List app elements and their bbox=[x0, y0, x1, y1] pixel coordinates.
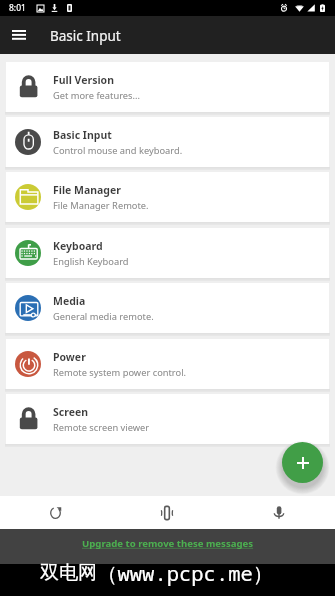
staticText: File Manager Remote. bbox=[53, 199, 149, 212]
staticText: Basic Input bbox=[50, 27, 121, 45]
button[interactable]: File Manager bbox=[6, 172, 329, 222]
button[interactable]: Power bbox=[6, 339, 329, 389]
staticText: Media bbox=[53, 294, 86, 308]
staticText: Screen bbox=[53, 405, 89, 419]
staticText: Power bbox=[53, 350, 86, 364]
button[interactable]: Add bbox=[282, 442, 323, 483]
staticText: Remote screen viewer bbox=[53, 421, 150, 434]
staticText: Get more features... bbox=[53, 89, 141, 102]
staticText: General media remote. bbox=[53, 310, 154, 323]
staticText: （www.pcpc.me） bbox=[97, 559, 274, 587]
button[interactable]: Vibrate bbox=[111, 496, 223, 529]
button[interactable]: Keyboard bbox=[6, 228, 329, 278]
staticText: File Manager bbox=[53, 183, 121, 197]
staticText: 双电网 bbox=[40, 561, 97, 585]
button[interactable]: Basic Input bbox=[6, 117, 329, 167]
staticText: Upgrade to remove these messages bbox=[82, 537, 254, 550]
staticText: English Keyboard bbox=[53, 255, 129, 268]
staticText: Full Version bbox=[53, 73, 114, 87]
button[interactable]: Refresh bbox=[0, 496, 111, 529]
button[interactable]: Voice bbox=[223, 496, 335, 529]
staticText: Control mouse and keyboard. bbox=[53, 144, 183, 157]
staticText: 8:01 bbox=[9, 2, 26, 14]
button[interactable]: Menu bbox=[4, 20, 34, 50]
staticText: Basic Input bbox=[53, 128, 112, 142]
button[interactable]: Upgrade to remove these messages bbox=[82, 537, 254, 550]
staticText: Keyboard bbox=[53, 239, 103, 253]
staticText: Remote system power control. bbox=[53, 366, 187, 379]
button[interactable]: Full Version bbox=[6, 62, 329, 112]
button[interactable]: Screen bbox=[6, 394, 329, 444]
button[interactable]: Media bbox=[6, 283, 329, 333]
